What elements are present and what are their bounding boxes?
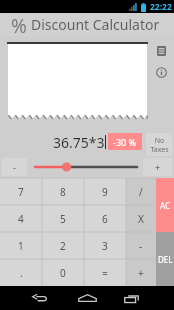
button[interactable]: 3 — [84, 232, 126, 259]
staticText: + — [155, 161, 161, 173]
button[interactable]: Receipt list — [157, 46, 166, 56]
button[interactable]: No Taxes — [146, 133, 172, 156]
staticText: / — [139, 185, 143, 199]
staticText: X — [138, 212, 144, 226]
button[interactable]: X — [126, 205, 156, 232]
staticText: 9 — [102, 185, 108, 199]
staticText: 2 — [60, 239, 66, 253]
staticText: 8 — [60, 185, 66, 199]
staticText: 7 — [18, 185, 24, 199]
staticText: . — [20, 266, 23, 280]
button[interactable]: . — [0, 259, 42, 286]
staticText: 4 — [18, 212, 24, 226]
button[interactable]: 2 — [42, 232, 84, 259]
button[interactable]: / — [126, 178, 156, 205]
staticText: 5 — [60, 212, 66, 226]
button[interactable]: 7 — [0, 178, 42, 205]
staticText: % — [11, 13, 27, 36]
button[interactable]: 1 — [0, 232, 42, 259]
button[interactable]: - — [2, 158, 27, 176]
staticText: 1 — [18, 239, 24, 253]
staticText: - — [139, 239, 143, 253]
staticText: 22:22 — [150, 1, 172, 13]
staticText: No Taxes — [150, 136, 169, 154]
button[interactable]: = — [84, 259, 126, 286]
staticText: 3 — [102, 239, 108, 253]
staticText: + — [138, 266, 144, 280]
button[interactable]: 9 — [84, 178, 126, 205]
staticText: = — [102, 266, 108, 280]
button[interactable]: Back — [28, 286, 52, 310]
button[interactable]: + — [143, 158, 172, 176]
button[interactable]: 0 — [42, 259, 84, 286]
button[interactable]: 4 — [0, 205, 42, 232]
button[interactable]: Info — [156, 67, 167, 78]
staticText: 0 — [60, 266, 66, 280]
staticText: 36.75*3 — [53, 133, 105, 151]
button[interactable]: AC — [156, 178, 174, 232]
button[interactable]: Home — [75, 286, 99, 310]
button[interactable]: - — [126, 232, 156, 259]
staticText: 6 — [102, 212, 108, 226]
button[interactable]: DEL — [156, 232, 174, 286]
staticText: DEL — [158, 254, 173, 265]
staticText: Discount Calculator — [31, 15, 160, 34]
button[interactable]: 6 — [84, 205, 126, 232]
staticText: - — [13, 161, 16, 173]
button[interactable]: 5 — [42, 205, 84, 232]
staticText: AC — [160, 200, 171, 211]
button[interactable]: Recents — [119, 286, 143, 310]
button[interactable]: 8 — [42, 178, 84, 205]
button[interactable]: + — [126, 259, 156, 286]
button[interactable]: -30 % — [108, 133, 142, 150]
staticText: -30 % — [113, 136, 137, 148]
